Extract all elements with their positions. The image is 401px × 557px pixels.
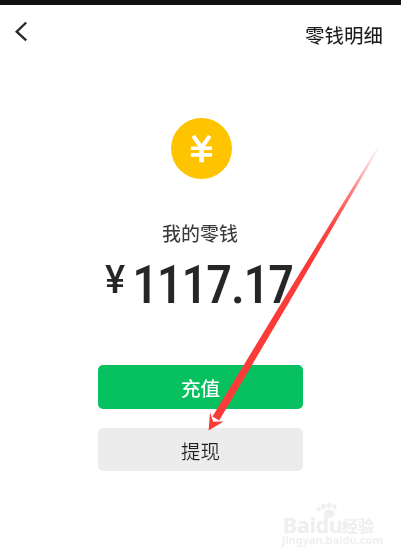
button[interactable]: 充值 [98,365,303,409]
staticText: 经验 [342,513,375,536]
button[interactable]: Back [0,7,44,55]
staticText: ¥ [105,258,126,303]
button[interactable]: 提现 [98,428,303,471]
staticText: 我的零钱 [162,219,239,247]
staticText: 1117.17 [132,254,293,316]
staticText: 提现 [181,436,221,464]
staticText: jingyan.baidu.com [282,532,384,547]
staticText: 充值 [181,373,221,401]
staticText: Baidu [283,511,343,540]
staticText: 零钱明细 [305,20,384,48]
